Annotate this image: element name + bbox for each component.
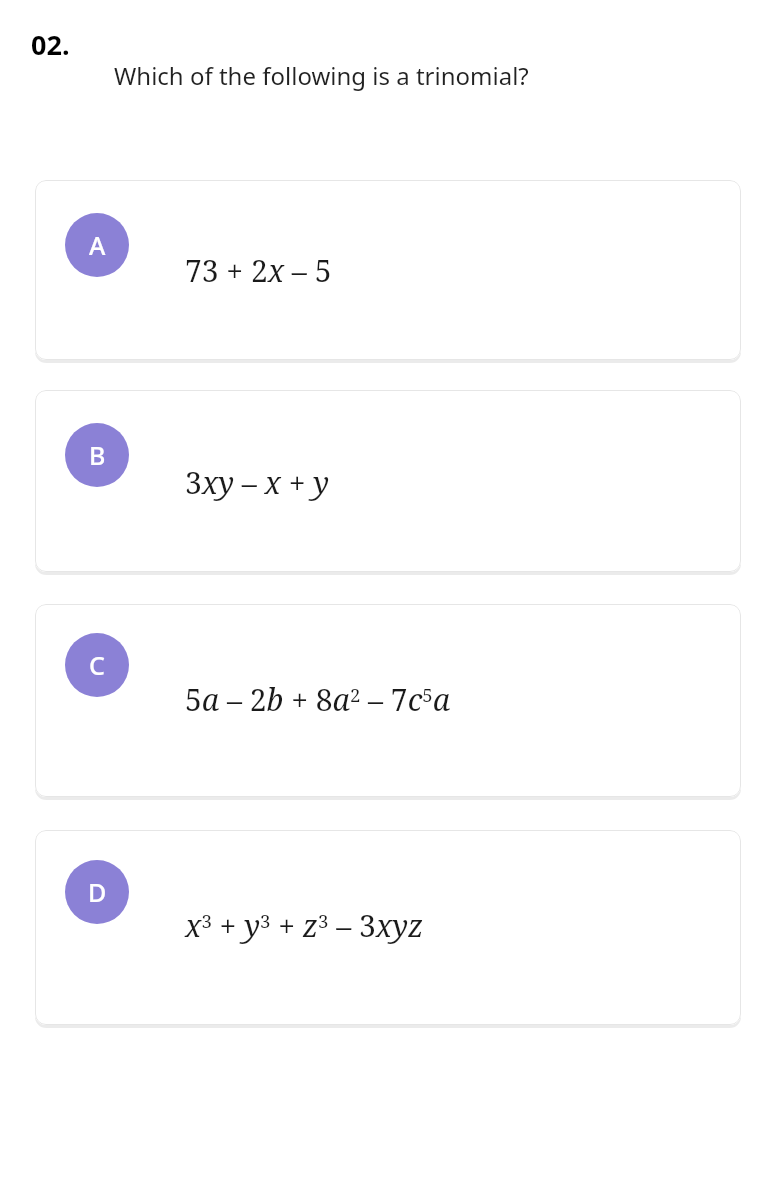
staticText: 3xy – x + y [185,462,330,503]
button[interactable]: D [35,830,741,1029]
staticText: 5a – 2b + 8a2 – 7c5a [185,679,451,720]
staticText: 02. [31,26,70,63]
staticText: C [89,648,105,682]
staticText: A [89,228,106,262]
staticText: Which of the following is a trinomial? [114,59,529,92]
staticText: D [88,875,107,909]
staticText: x3 + y3 + z3 – 3xyz [185,905,424,946]
button[interactable]: A [35,180,741,364]
staticText: B [89,438,106,472]
button[interactable]: C [35,604,741,801]
button[interactable]: B [35,390,741,576]
staticText: 73 + 2x – 5 [185,250,332,291]
